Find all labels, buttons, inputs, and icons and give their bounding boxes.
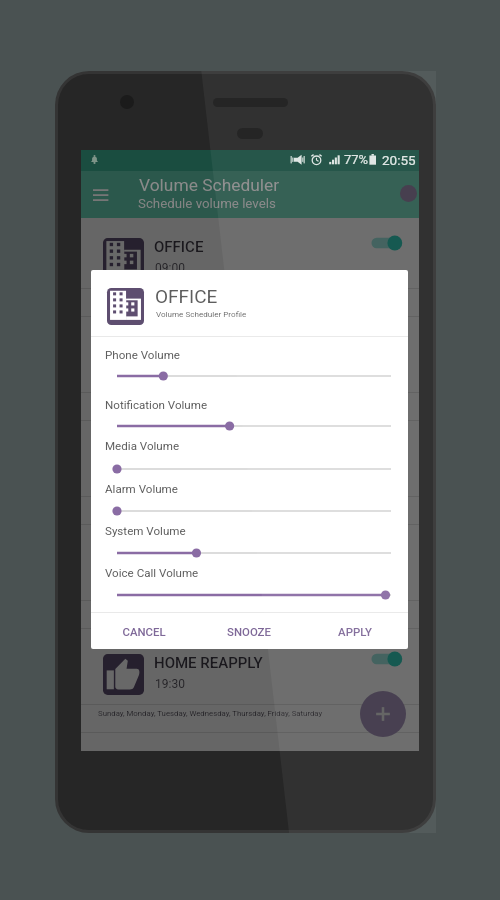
- staticText: WEEKEND: [154, 446, 223, 464]
- button[interactable]: NIGHT: [81, 530, 419, 600]
- staticText: CANCEL: [122, 625, 166, 638]
- staticText: Sunday, Monday, Tuesday, Wednesday, Thur…: [98, 605, 265, 614]
- staticText: Saturday, Sunday: [98, 501, 158, 510]
- staticText: Monday, Tuesday, Wednesday, Thursday, Fr…: [98, 397, 261, 406]
- button[interactable]: Toggle HOME REAPPLY: [367, 647, 407, 671]
- staticText: OFFICE: [154, 238, 204, 256]
- button[interactable]: SNOOZE: [196, 613, 302, 649]
- button[interactable]: APPLY: [302, 613, 408, 649]
- button[interactable]: Add schedule: [360, 691, 406, 737]
- button[interactable]: HOME: [81, 322, 419, 392]
- staticText: System Volume: [105, 524, 186, 538]
- button[interactable]: Toggle HOME: [367, 335, 407, 359]
- button[interactable]: HOME REAPPLY: [81, 634, 419, 704]
- staticText: 20:55: [382, 152, 416, 168]
- button[interactable]: Toggle NIGHT: [367, 543, 407, 567]
- staticText: APPLY: [338, 625, 372, 638]
- staticText: Volume Scheduler Profile: [156, 309, 247, 318]
- staticText: Schedule volume levels: [138, 196, 276, 212]
- button[interactable]: Toggle OFFICE: [367, 231, 407, 255]
- staticText: OFFICE: [155, 285, 218, 307]
- staticText: 23:00: [155, 573, 185, 587]
- staticText: Volume Scheduler: [139, 175, 280, 195]
- staticText: Voice Call Volume: [105, 566, 199, 580]
- staticText: 09:00: [155, 261, 185, 275]
- button[interactable]: CANCEL: [91, 613, 196, 649]
- staticText: Sunday, Monday, Tuesday, Wednesday, Thur…: [98, 709, 323, 718]
- staticText: NIGHT: [154, 550, 199, 568]
- staticText: Alarm Volume: [105, 482, 178, 496]
- staticText: Phone Volume: [105, 348, 180, 362]
- staticText: 18:00: [155, 365, 185, 379]
- button[interactable]: Open navigation menu: [87, 182, 115, 210]
- button[interactable]: Profile: [400, 185, 417, 202]
- staticText: Media Volume: [105, 439, 180, 453]
- staticText: 77%: [344, 152, 369, 167]
- staticText: HOME: [154, 342, 197, 360]
- staticText: 19:30: [155, 677, 185, 691]
- staticText: HOME REAPPLY: [154, 654, 263, 672]
- staticText: SNOOZE: [227, 625, 271, 638]
- button[interactable]: WEEKEND: [81, 426, 419, 496]
- staticText: Notification Volume: [105, 398, 208, 412]
- staticText: Monday, Tuesday, Wednesday, Thursday, Fr…: [98, 293, 261, 302]
- staticText: 10:00: [155, 469, 185, 483]
- button[interactable]: OFFICE: [81, 218, 419, 288]
